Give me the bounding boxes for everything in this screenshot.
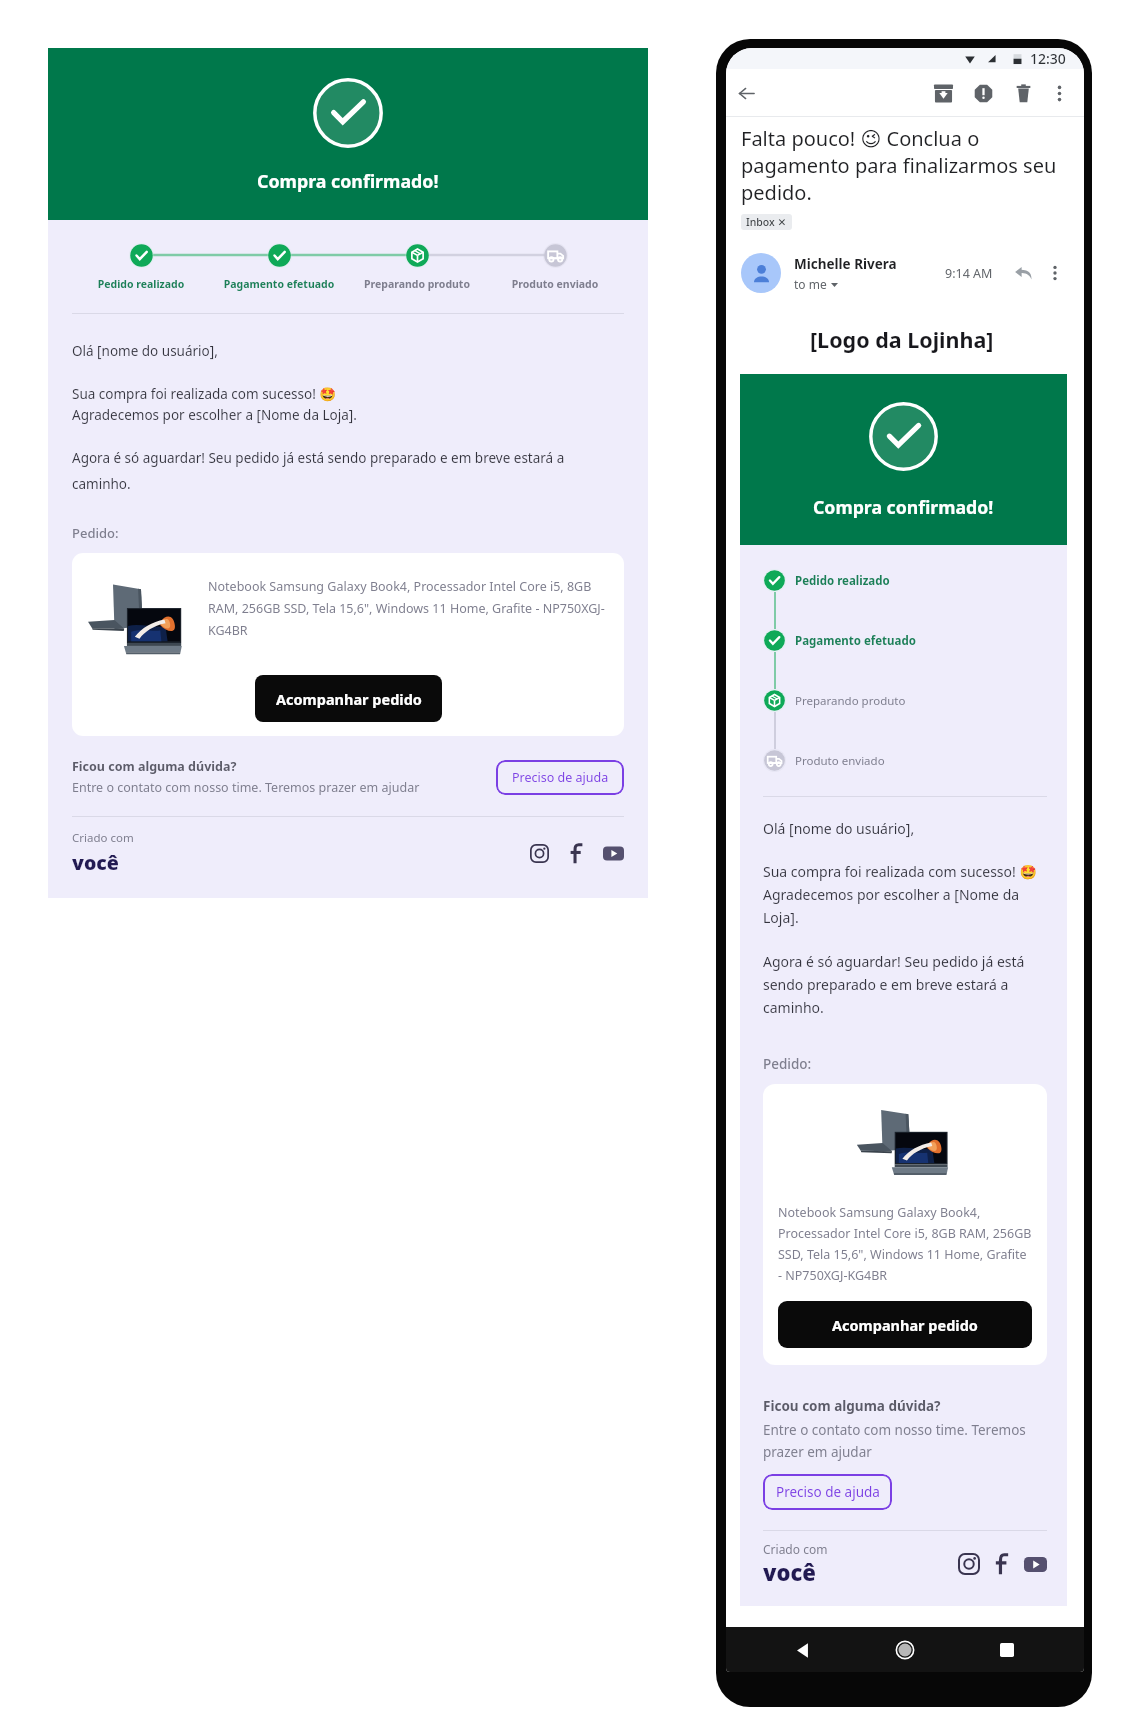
other: Facebook	[566, 843, 587, 864]
staticText: Pedido:	[763, 1055, 812, 1073]
staticText: Compra confirmado!	[257, 169, 439, 193]
other: YouTube	[603, 843, 624, 864]
staticText: Pagamento efetuado	[795, 633, 916, 649]
staticText: Entre o contato com nosso time. Teremos …	[763, 1421, 1047, 1461]
other: Instagram	[958, 1553, 980, 1575]
button[interactable]: Recents	[986, 1629, 1028, 1671]
staticText: Acompanhar pedido	[276, 689, 422, 709]
staticText: Preciso de ajuda	[776, 1483, 880, 1501]
button[interactable]: Acompanhar pedido	[255, 675, 442, 722]
staticText: Michelle Rivera	[794, 255, 897, 273]
staticText: Agora é só aguardar! Seu pedido já está …	[763, 952, 1047, 1017]
button[interactable]: More options	[1044, 78, 1074, 108]
staticText: Produto enviado	[486, 277, 624, 291]
staticText: Pedido:	[72, 524, 119, 542]
staticText: Ficou com alguma dúvida?	[72, 758, 237, 775]
staticText: Olá [nome do usuário],	[72, 342, 218, 360]
staticText: Criado com	[72, 830, 134, 846]
button[interactable]: Preciso de ajuda	[763, 1474, 892, 1510]
staticText: Pedido realizado	[72, 277, 210, 291]
staticText: Notebook Samsung Galaxy Book4, Processad…	[778, 1204, 1032, 1284]
staticText: 12:30	[1030, 49, 1066, 68]
staticText: Criado com	[763, 1541, 828, 1557]
staticText: Sua compra foi realizada com sucesso! 🤩	[72, 385, 337, 403]
staticText: Notebook Samsung Galaxy Book4, Processad…	[208, 578, 615, 639]
staticText: Preparando produto	[795, 693, 906, 709]
staticText: Produto enviado	[795, 753, 885, 769]
staticText: Inbox ✕	[746, 215, 787, 229]
staticText: Sua compra foi realizada com sucesso! 🤩 …	[763, 862, 1047, 927]
other: YouTube	[1024, 1553, 1047, 1576]
staticText: 9:14 AM	[945, 265, 993, 282]
other: Facebook	[991, 1553, 1013, 1575]
button[interactable]: Delete	[1006, 76, 1040, 110]
other: Instagram	[530, 844, 549, 863]
staticText: Ficou com alguma dúvida?	[763, 1397, 941, 1415]
button[interactable]: Back	[730, 77, 762, 109]
staticText: Pagamento efetuado	[210, 277, 348, 291]
staticText: to me	[794, 276, 827, 292]
staticText: Olá [nome do usuário],	[763, 819, 915, 838]
staticText: Compra confirmado!	[813, 495, 994, 519]
staticText: Pedido realizado	[795, 573, 890, 589]
staticText: Entre o contato com nosso time. Teremos …	[72, 779, 420, 796]
staticText: você	[72, 849, 119, 876]
staticText: Preciso de ajuda	[512, 769, 609, 786]
button[interactable]: Back	[782, 1629, 824, 1671]
staticText: Acompanhar pedido	[832, 1315, 978, 1335]
staticText: Preparando produto	[348, 277, 486, 291]
button[interactable]: Home	[884, 1629, 926, 1671]
button[interactable]: Report spam	[966, 76, 1000, 110]
staticText: você	[763, 1557, 816, 1587]
button[interactable]: Acompanhar pedido	[778, 1301, 1032, 1348]
button[interactable]: More options	[1044, 262, 1066, 284]
button[interactable]: Reply	[1012, 262, 1034, 284]
staticText: Agora é só aguardar! Seu pedido já está …	[72, 449, 624, 493]
staticText: [Logo da Lojinha]	[810, 325, 994, 354]
button[interactable]: Preciso de ajuda	[496, 760, 624, 795]
staticText: Falta pouco! 😉 Conclua o pagamento para …	[741, 125, 1066, 206]
staticText: Agradecemos por escolher a [Nome da Loja…	[72, 406, 357, 424]
button[interactable]: Archive	[926, 76, 960, 110]
